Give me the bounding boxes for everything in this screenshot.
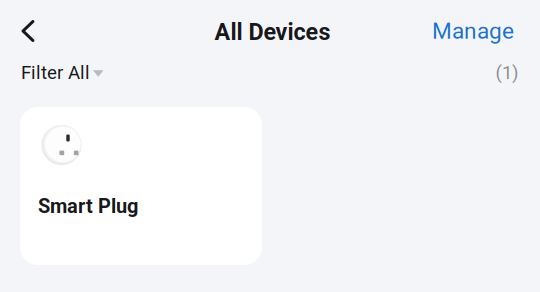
staticText: 1 [502, 62, 512, 83]
button[interactable]: Filter All [21, 58, 103, 86]
staticText: Filter All [21, 62, 90, 83]
button[interactable]: Smart Plug [20, 107, 262, 265]
button[interactable]: Back [6, 9, 50, 53]
staticText: ) [512, 62, 518, 83]
staticText: Manage [432, 18, 514, 44]
staticText: All Devices [214, 18, 330, 46]
staticText: Smart Plug [38, 195, 138, 218]
button[interactable]: Manage [427, 11, 519, 51]
staticText: ( [495, 62, 501, 83]
